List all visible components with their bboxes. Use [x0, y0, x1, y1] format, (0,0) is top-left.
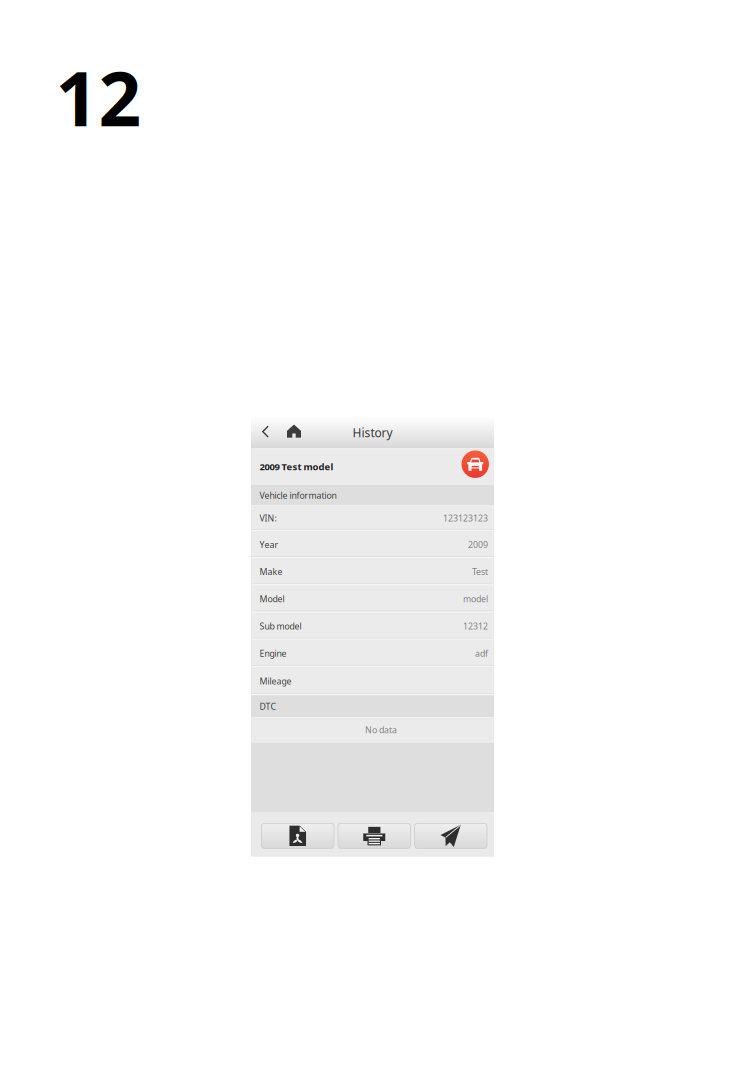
staticText: Test: [472, 566, 488, 578]
staticText: adf: [475, 647, 488, 659]
button[interactable]: Sub model: [251, 612, 494, 640]
staticText: Vehicle information: [259, 489, 336, 501]
button[interactable]: Back: [254, 417, 277, 448]
staticText: History: [352, 424, 392, 441]
button[interactable]: Send: [414, 823, 487, 848]
staticText: Make: [259, 566, 282, 578]
button[interactable]: Model: [251, 585, 494, 612]
staticText: model: [463, 593, 488, 605]
staticText: Engine: [259, 647, 286, 659]
button[interactable]: Year: [251, 531, 494, 558]
button[interactable]: Mileage: [251, 667, 494, 695]
button[interactable]: Engine: [251, 640, 494, 667]
button[interactable]: VIN:: [251, 505, 494, 531]
staticText: 2009 Test model: [259, 460, 333, 473]
button[interactable]: Home: [277, 417, 307, 448]
button[interactable]: Save as PDF: [261, 823, 334, 848]
staticText: DTC: [259, 700, 276, 712]
staticText: 123123123: [443, 512, 488, 524]
staticText: Model: [259, 593, 284, 605]
staticText: 2009: [468, 538, 488, 550]
button[interactable]: Print: [338, 823, 410, 848]
button[interactable]: Make: [251, 558, 494, 585]
staticText: Mileage: [259, 675, 291, 687]
staticText: 12: [55, 46, 141, 148]
staticText: VIN:: [259, 512, 276, 524]
staticText: Sub model: [259, 620, 301, 632]
staticText: No data: [365, 724, 397, 736]
staticText: 12312: [463, 620, 488, 632]
staticText: Year: [259, 538, 278, 550]
